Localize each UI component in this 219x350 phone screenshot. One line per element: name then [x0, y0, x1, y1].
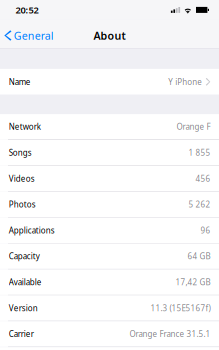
button[interactable]: Applications	[0, 218, 219, 243]
staticText: General	[14, 28, 54, 43]
staticText: 5 262	[188, 199, 210, 210]
staticText: 1 855	[188, 147, 210, 158]
staticText: Carrier	[9, 329, 34, 339]
button[interactable]: Network	[0, 114, 219, 139]
staticText: Name	[9, 76, 31, 87]
staticText: Capacity	[9, 251, 40, 261]
staticText: 11.3 (15E5167f)	[150, 303, 210, 313]
staticText: 17,42 GB	[175, 277, 210, 287]
button[interactable]: Photos	[0, 192, 219, 217]
button[interactable]: Available	[0, 269, 219, 295]
staticText: Orange France 31.5.1	[129, 329, 210, 339]
staticText: Orange F	[176, 121, 210, 132]
staticText: Network	[9, 121, 41, 132]
button[interactable]: Carrier	[0, 321, 219, 347]
staticText: 96	[200, 225, 210, 236]
staticText: 456	[195, 173, 210, 184]
staticText: 64 GB	[187, 251, 210, 261]
button[interactable]: Videos	[0, 166, 219, 191]
button[interactable]: Name	[0, 69, 219, 95]
button[interactable]: Songs	[0, 140, 219, 165]
staticText: Songs	[9, 147, 32, 158]
staticText: Applications	[9, 225, 55, 236]
button[interactable]: General	[0, 20, 60, 48]
staticText: About	[93, 28, 125, 43]
staticText: 20:52	[15, 4, 38, 16]
staticText: Version	[9, 303, 38, 313]
staticText: Videos	[9, 173, 35, 184]
staticText: Available	[9, 277, 42, 287]
staticText: Y iPhone	[168, 76, 202, 87]
staticText: Photos	[9, 199, 36, 210]
button[interactable]: Capacity	[0, 244, 219, 269]
button[interactable]: Version	[0, 295, 219, 321]
